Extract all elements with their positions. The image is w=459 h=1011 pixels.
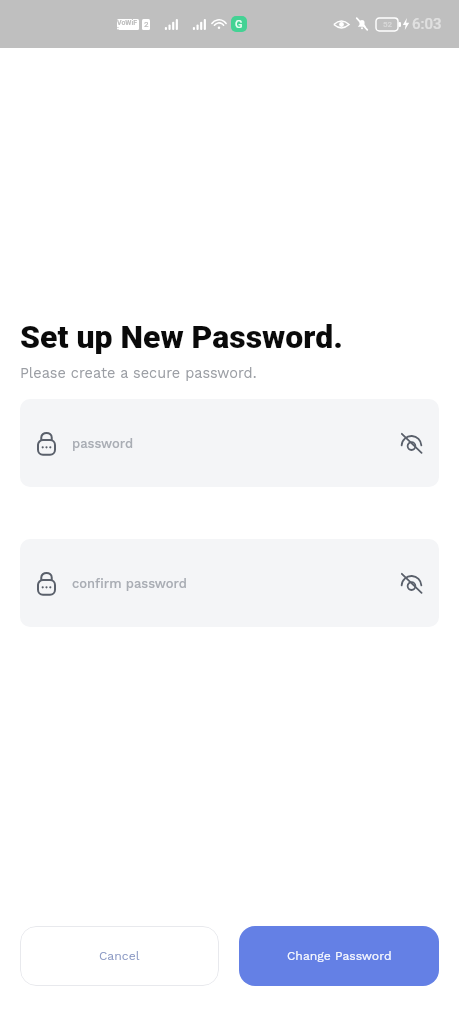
staticText: 2 bbox=[144, 20, 149, 29]
staticText: confirm password bbox=[72, 576, 187, 591]
staticText: VoWiFi bbox=[117, 19, 139, 30]
staticText: password bbox=[72, 436, 134, 451]
staticText: 52 bbox=[383, 20, 393, 29]
button[interactable]: Change Password bbox=[239, 926, 439, 986]
staticText: Please create a secure password. bbox=[20, 365, 257, 382]
button[interactable]: Show password bbox=[389, 561, 433, 605]
staticText: Set up New Password. bbox=[20, 318, 343, 356]
staticText: 6:03 bbox=[412, 15, 442, 33]
staticText: G bbox=[235, 18, 243, 31]
button[interactable]: password bbox=[20, 399, 439, 487]
button[interactable]: confirm password bbox=[20, 539, 439, 627]
staticText: Change Password bbox=[287, 949, 392, 963]
staticText: Cancel bbox=[99, 949, 140, 963]
button[interactable]: Show password bbox=[389, 421, 433, 465]
button[interactable]: Cancel bbox=[20, 926, 219, 986]
